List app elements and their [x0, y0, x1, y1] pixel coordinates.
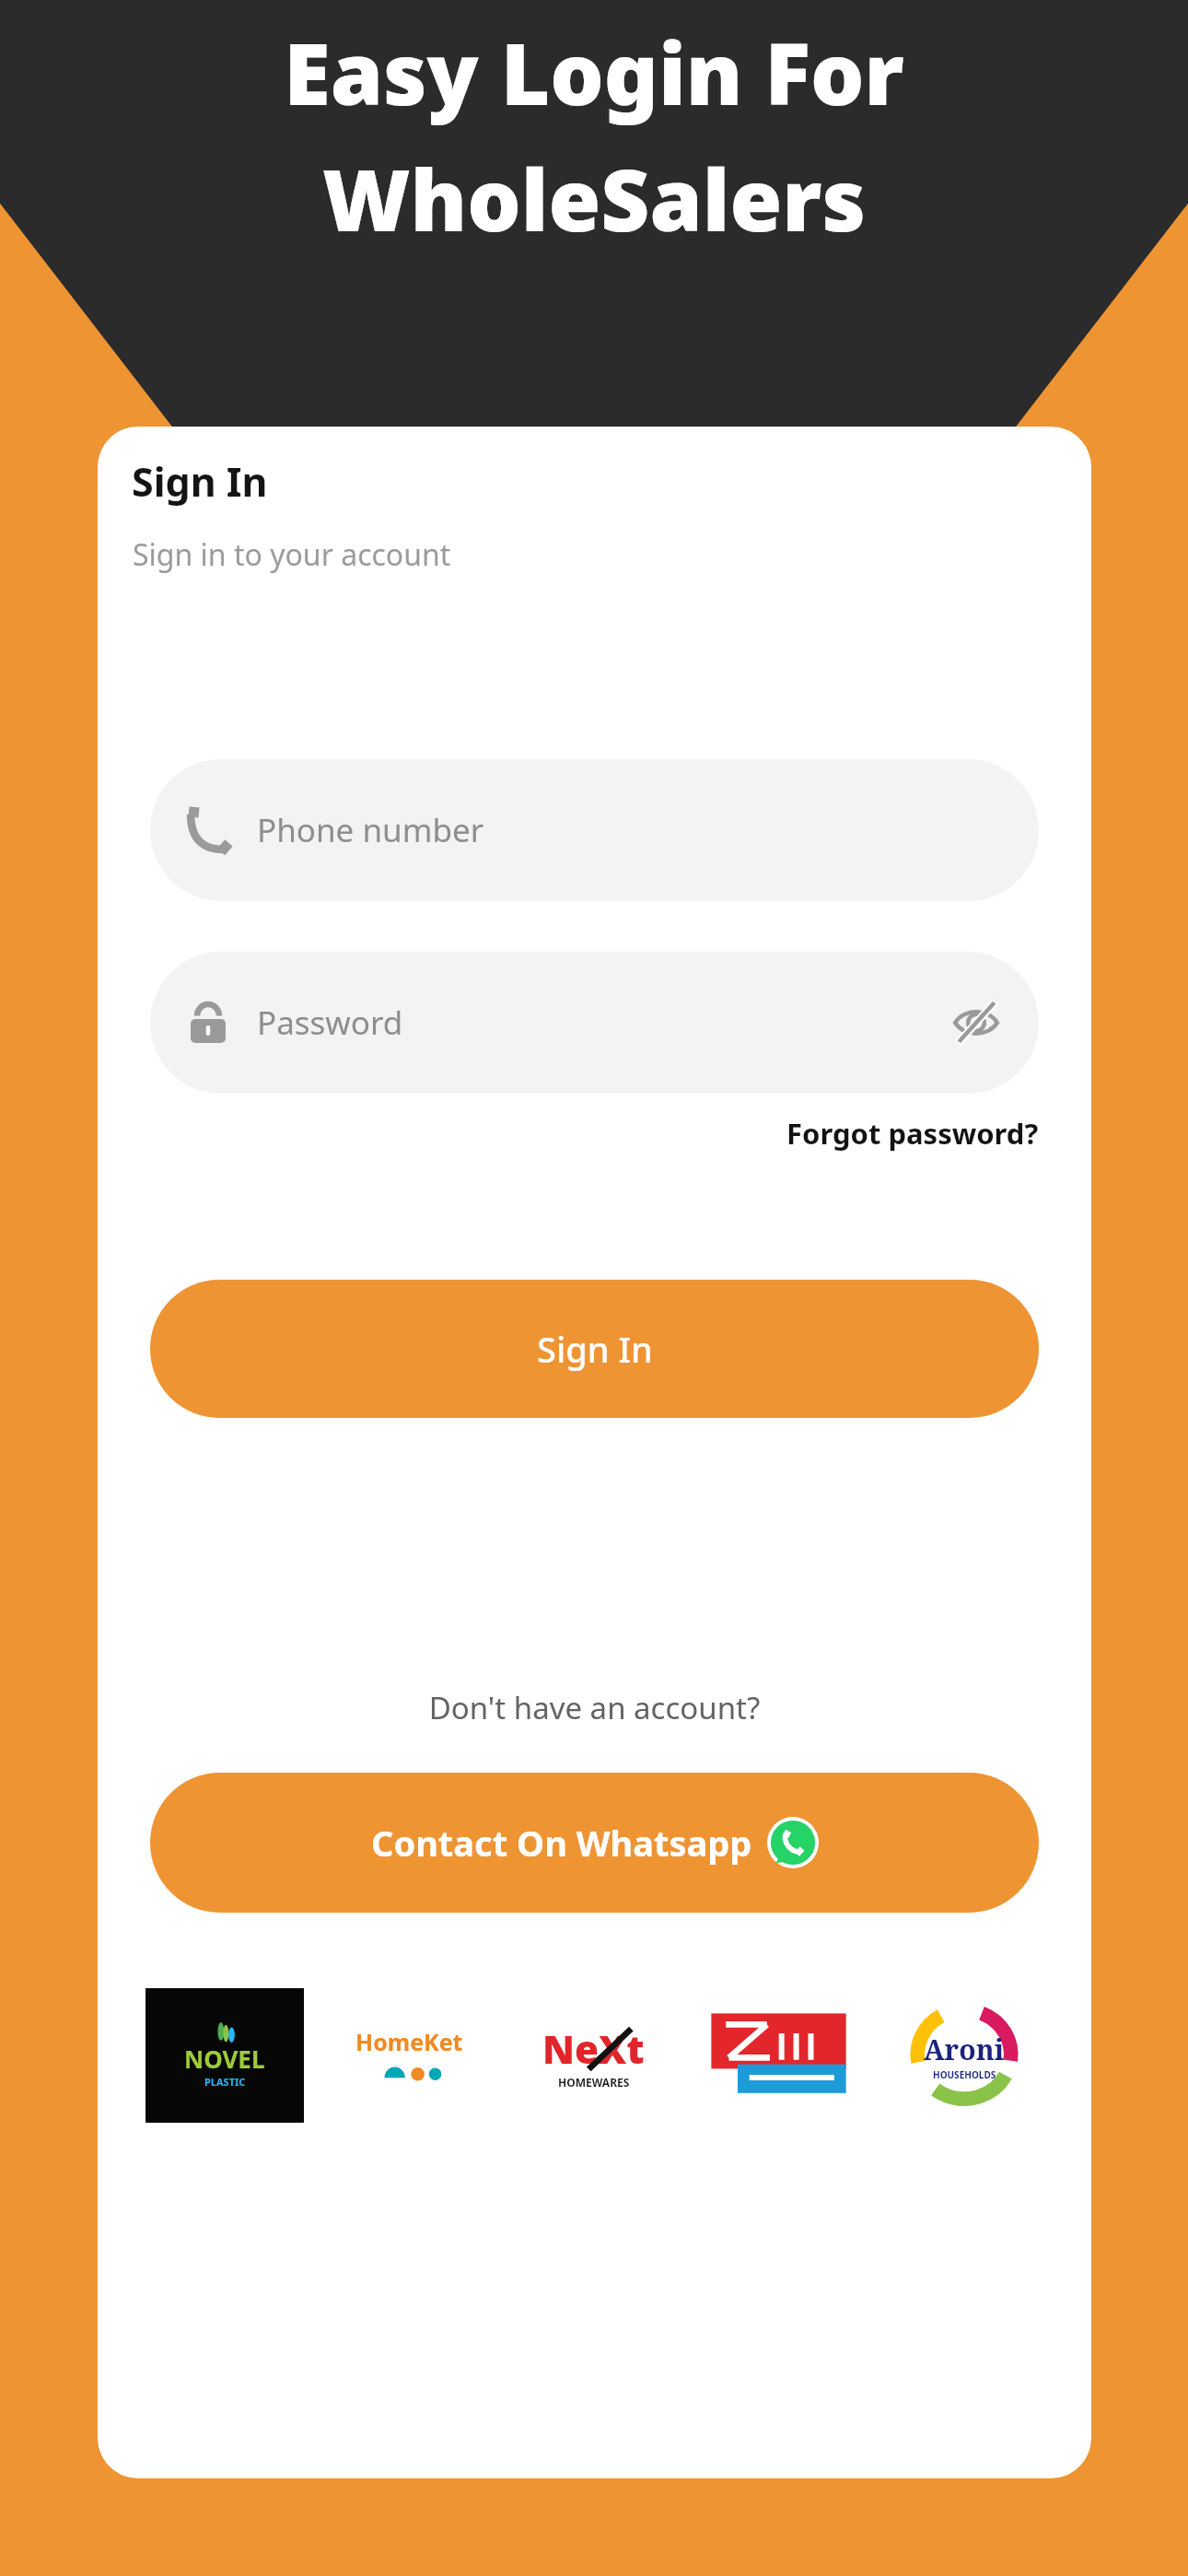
button[interactable]: Contact On Whatsapp: [150, 1773, 1039, 1913]
staticText: WholeSalers: [0, 141, 1188, 256]
staticText: Aroni: [924, 2031, 1005, 2068]
button[interactable]: Show password: [947, 993, 1006, 1052]
button[interactable]: Forgot password?: [786, 1114, 1039, 1153]
staticText: HomeKet: [355, 2026, 463, 2057]
staticText: Contact On Whatsapp: [371, 1819, 752, 1867]
staticText: NOVEL: [184, 2043, 265, 2075]
staticText: Phone number: [257, 808, 1006, 852]
staticText: NeXt: [542, 2022, 645, 2075]
button[interactable]: Password: [150, 952, 1039, 1094]
staticText: Sign In: [537, 1325, 653, 1373]
staticText: Password: [257, 1001, 947, 1045]
button[interactable]: Phone number: [150, 759, 1039, 901]
staticText: Sign in to your account: [133, 534, 451, 575]
staticText: PLASTIC: [204, 2075, 246, 2089]
staticText: Sign In: [132, 454, 268, 509]
staticText: HOMEWARES: [558, 2075, 630, 2090]
button[interactable]: Sign In: [150, 1280, 1039, 1418]
staticText: HOUSEHOLDS: [933, 2068, 996, 2081]
staticText: Easy Login For: [0, 15, 1188, 130]
staticText: Don't have an account?: [98, 1687, 1091, 1728]
